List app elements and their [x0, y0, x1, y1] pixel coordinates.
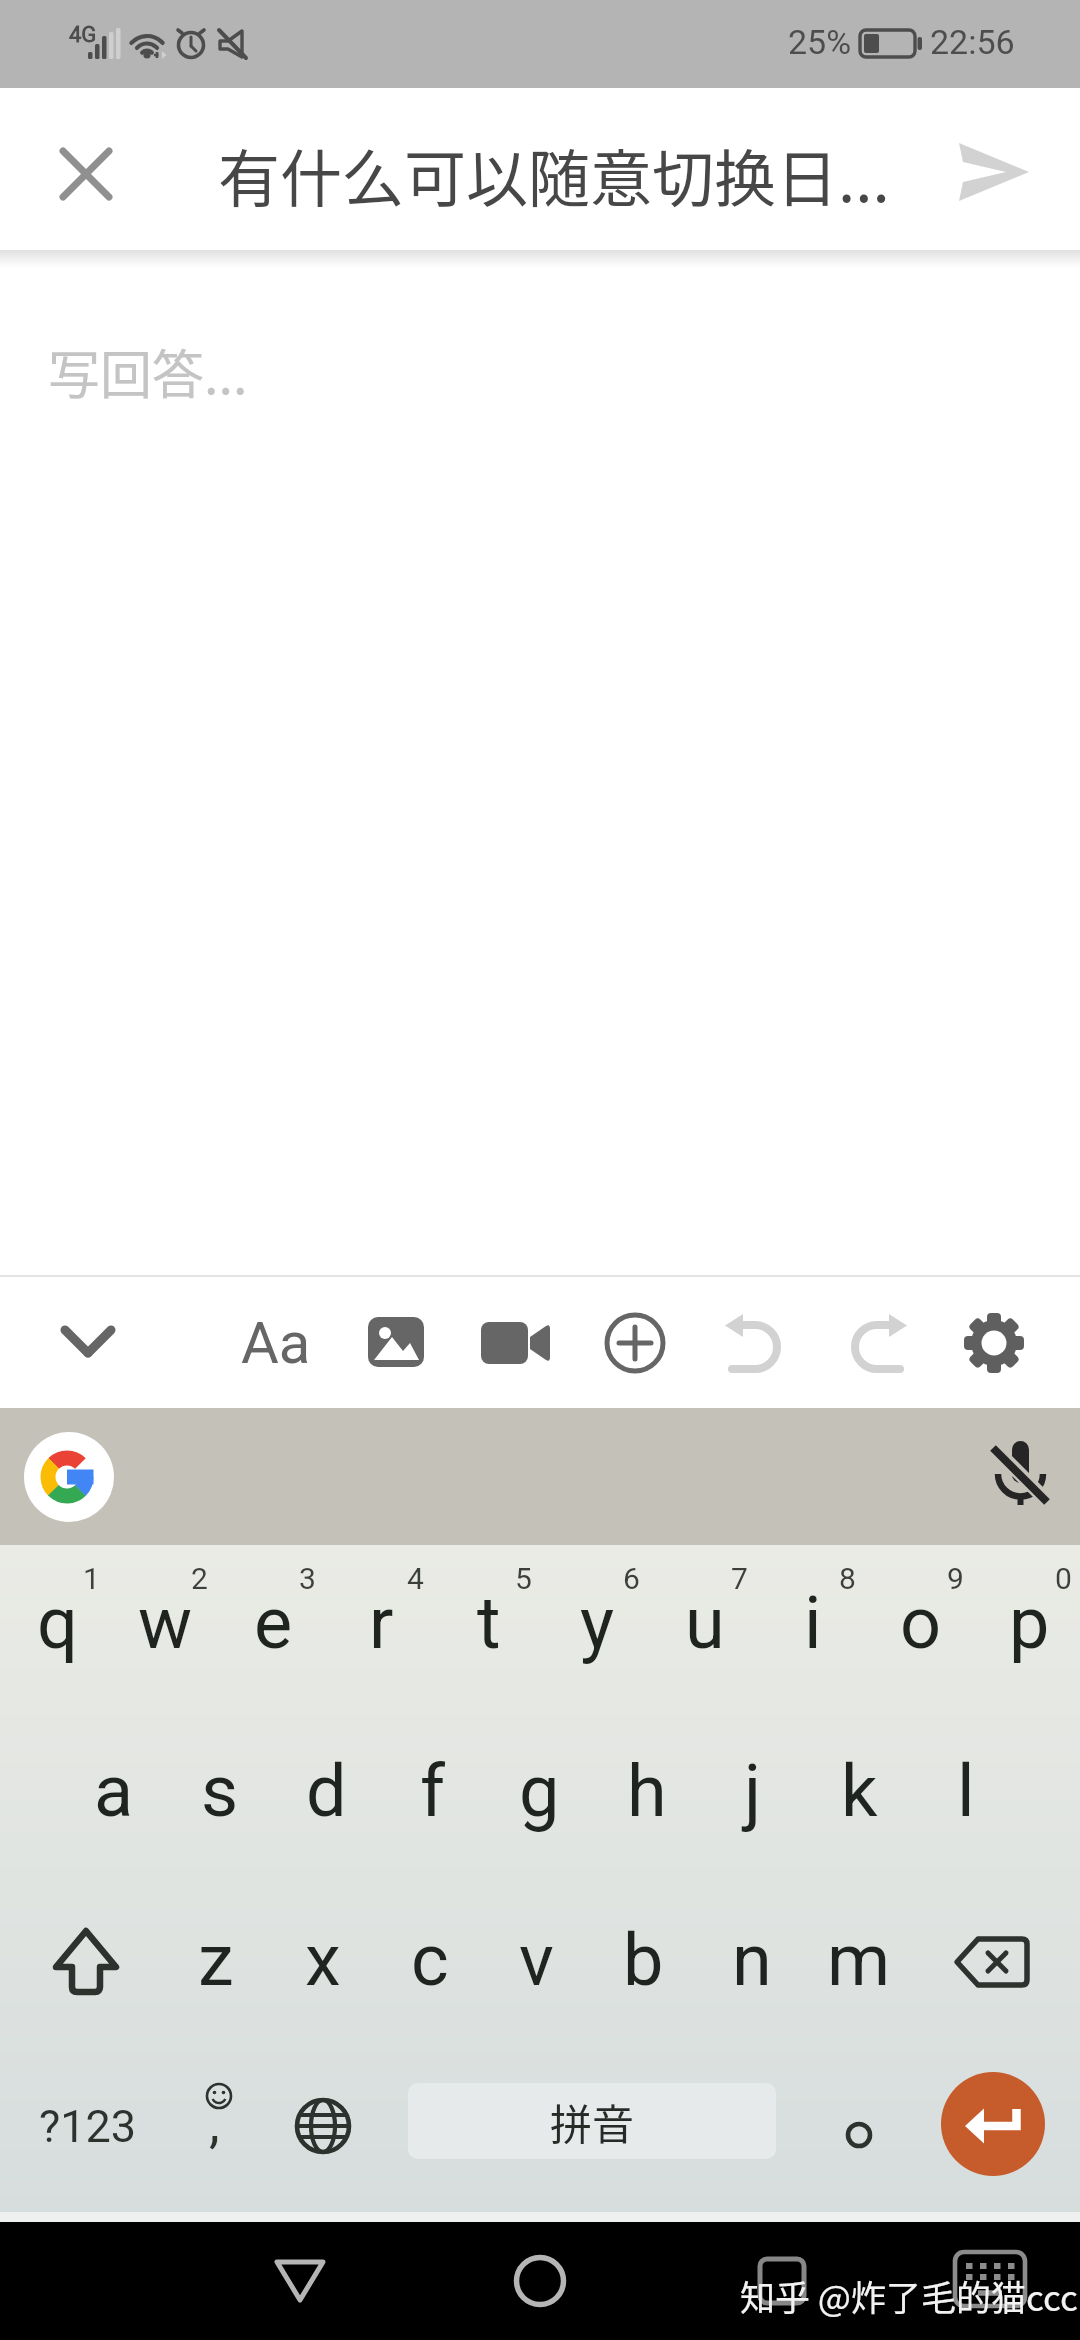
- button[interactable]: [732, 2232, 832, 2330]
- staticText: h: [627, 1749, 667, 1833]
- staticText: 25%: [788, 22, 852, 62]
- staticText: 22:56: [930, 22, 1015, 62]
- button[interactable]: x: [269, 1876, 376, 2043]
- button[interactable]: [490, 2232, 590, 2330]
- button[interactable]: [48, 136, 124, 212]
- button[interactable]: s: [166, 1707, 273, 1874]
- staticText: 4: [407, 1561, 424, 1596]
- staticText: 3: [299, 1561, 316, 1596]
- staticText: r: [369, 1581, 394, 1665]
- staticText: 写回答...: [48, 334, 248, 409]
- staticText: a: [94, 1749, 134, 1833]
- staticText: c: [411, 1918, 449, 2002]
- staticText: q: [37, 1581, 78, 1665]
- staticText: i: [804, 1581, 822, 1665]
- button[interactable]: y: [543, 1548, 651, 1698]
- staticText: b: [623, 1918, 664, 2002]
- button[interactable]: a: [60, 1707, 167, 1874]
- staticText: ?123: [39, 2100, 137, 2153]
- button[interactable]: [250, 2232, 350, 2330]
- button[interactable]: f: [379, 1707, 486, 1874]
- button[interactable]: j: [699, 1707, 806, 1874]
- button[interactable]: q: [3, 1548, 111, 1698]
- button[interactable]: [934, 1907, 1050, 2017]
- button[interactable]: o: [867, 1548, 975, 1698]
- button[interactable]: [954, 1303, 1034, 1383]
- button[interactable]: c: [376, 1876, 483, 2043]
- staticText: e: [254, 1581, 293, 1665]
- staticText: d: [306, 1749, 347, 1833]
- staticText: 1: [83, 1561, 100, 1596]
- button[interactable]: e: [219, 1548, 327, 1698]
- staticText: v: [519, 1918, 554, 2002]
- staticText: 有什么可以随意切换日...: [218, 130, 890, 220]
- staticText: 9: [947, 1561, 964, 1596]
- button[interactable]: i: [759, 1548, 867, 1698]
- staticText: 2: [191, 1561, 208, 1596]
- staticText: 5: [515, 1561, 532, 1596]
- button[interactable]: Aa: [234, 1303, 318, 1383]
- button[interactable]: g: [486, 1707, 593, 1874]
- staticText: u: [685, 1581, 725, 1665]
- button[interactable]: b: [590, 1876, 697, 2043]
- staticText: 4G: [69, 22, 97, 48]
- button[interactable]: ?123: [24, 2066, 152, 2186]
- button[interactable]: [940, 128, 1050, 218]
- staticText: 7: [731, 1561, 748, 1596]
- button[interactable]: [716, 1303, 796, 1383]
- button[interactable]: p: [975, 1548, 1080, 1698]
- staticText: m: [827, 1918, 891, 2002]
- staticText: g: [519, 1749, 560, 1833]
- staticText: f: [420, 1749, 446, 1833]
- staticText: s: [201, 1749, 239, 1833]
- button[interactable]: [836, 1303, 916, 1383]
- staticText: o: [900, 1581, 942, 1665]
- button[interactable]: [270, 2066, 376, 2186]
- staticText: 6: [623, 1561, 640, 1596]
- button[interactable]: r: [327, 1548, 435, 1698]
- button[interactable]: [978, 1432, 1058, 1512]
- button[interactable]: [805, 2075, 912, 2195]
- staticText: z: [198, 1918, 234, 2002]
- button[interactable]: d: [273, 1707, 380, 1874]
- button[interactable]: h: [593, 1707, 700, 1874]
- button[interactable]: 拼音: [408, 2083, 776, 2159]
- staticText: 知乎 @炸了毛的猫ccc: [740, 2270, 1078, 2321]
- staticText: 拼音: [550, 2091, 635, 2152]
- button[interactable]: [356, 1303, 436, 1383]
- staticText: k: [841, 1749, 878, 1833]
- button[interactable]: [935, 2230, 1045, 2328]
- button[interactable]: u: [651, 1548, 759, 1698]
- staticText: 8: [839, 1561, 856, 1596]
- staticText: x: [305, 1918, 341, 2002]
- button[interactable]: k: [806, 1707, 913, 1874]
- button[interactable]: l: [912, 1707, 1019, 1874]
- staticText: ,: [209, 2092, 220, 2155]
- button[interactable]: v: [483, 1876, 590, 2043]
- button[interactable]: w: [111, 1548, 219, 1698]
- button[interactable]: [48, 1303, 128, 1383]
- button[interactable]: z: [162, 1876, 269, 2043]
- staticText: Aa: [241, 1309, 311, 1377]
- button[interactable]: t: [435, 1548, 543, 1698]
- staticText: w: [138, 1581, 193, 1665]
- staticText: n: [732, 1918, 772, 2002]
- staticText: t: [477, 1581, 501, 1665]
- button[interactable]: m: [805, 1876, 912, 2043]
- button[interactable]: [476, 1303, 556, 1383]
- button[interactable]: [595, 1303, 675, 1383]
- staticText: y: [580, 1581, 615, 1665]
- button[interactable]: [30, 1907, 142, 2017]
- button[interactable]: ,: [165, 2056, 271, 2196]
- staticText: 0: [1055, 1561, 1072, 1596]
- button[interactable]: n: [698, 1876, 805, 2043]
- staticText: l: [957, 1749, 975, 1833]
- staticText: p: [1009, 1581, 1050, 1665]
- staticText: j: [744, 1749, 762, 1833]
- button[interactable]: [24, 1432, 114, 1522]
- button[interactable]: [941, 2072, 1045, 2176]
